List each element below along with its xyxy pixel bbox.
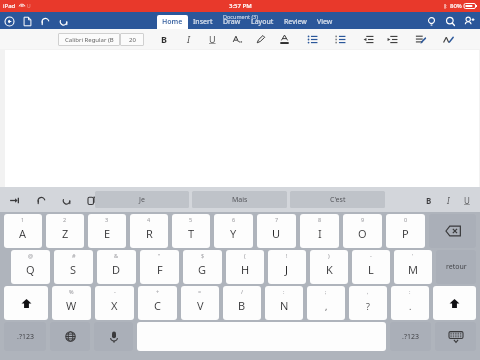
button[interactable]: I <box>442 194 454 206</box>
staticText: Review <box>284 17 307 27</box>
button[interactable]: 1 <box>4 214 42 248</box>
button[interactable]: 0 <box>386 214 425 248</box>
button[interactable]: Review <box>279 15 312 29</box>
button[interactable]: Font color <box>272 30 296 48</box>
button[interactable]: Je <box>95 191 189 208</box>
staticText: U <box>209 33 216 45</box>
button[interactable]: Paste <box>84 193 98 207</box>
button[interactable]: View <box>312 15 338 29</box>
button[interactable]: I <box>176 30 200 48</box>
button[interactable]: # <box>54 250 93 284</box>
button[interactable]: Numbered list <box>328 30 352 48</box>
button[interactable]: % <box>52 286 91 320</box>
button[interactable]: " <box>140 250 179 284</box>
staticText: Z <box>62 226 69 241</box>
button[interactable]: Search <box>445 16 456 27</box>
button[interactable]: Back <box>4 16 15 27</box>
button[interactable]: ; <box>307 286 345 320</box>
button[interactable]: Font color options <box>224 30 248 48</box>
button[interactable]: Tell me <box>426 16 437 27</box>
button[interactable]: Bulleted list <box>300 30 324 48</box>
button[interactable]: Calibri Regular (B <box>58 33 120 46</box>
staticText: : <box>283 288 285 295</box>
button[interactable]: ) <box>310 250 348 284</box>
staticText: T <box>188 226 195 241</box>
button[interactable]: - <box>352 250 390 284</box>
staticText: . <box>409 300 412 312</box>
button[interactable]: Draw <box>218 15 246 29</box>
button[interactable]: 9 <box>343 214 382 248</box>
button[interactable]: U <box>461 194 473 206</box>
staticText: " <box>158 252 161 259</box>
button[interactable]: Redo <box>59 193 73 207</box>
button[interactable]: 2 <box>46 214 84 248</box>
staticText: View <box>317 17 333 27</box>
staticText: Draw <box>223 17 241 27</box>
button[interactable]: Home <box>157 15 188 29</box>
button[interactable]: : <box>265 286 303 320</box>
button[interactable]: Increase indent <box>380 30 404 48</box>
button[interactable]: .?123 <box>390 322 431 351</box>
button[interactable]: Dictation <box>94 322 133 351</box>
button[interactable]: & <box>97 250 136 284</box>
button[interactable]: 3 <box>88 214 126 248</box>
button[interactable]: 4 <box>130 214 168 248</box>
button[interactable]: = <box>181 286 219 320</box>
staticText: - <box>114 288 116 295</box>
button[interactable]: Shift <box>433 286 476 320</box>
button[interactable]: @ <box>11 250 50 284</box>
button[interactable]: Highlight <box>248 30 272 48</box>
button[interactable]: Undo <box>40 16 51 27</box>
staticText: retour <box>446 262 467 272</box>
staticText: Q <box>26 262 35 277</box>
staticText: : <box>409 288 411 295</box>
staticText: Home <box>162 17 183 27</box>
button[interactable]: - <box>95 286 134 320</box>
button[interactable]: B <box>423 194 435 206</box>
button[interactable]: Change language <box>50 322 90 351</box>
button[interactable]: Shift <box>4 286 48 320</box>
button[interactable]: Mais <box>192 191 287 208</box>
button[interactable]: 20 <box>120 33 144 46</box>
button[interactable]: B <box>152 30 176 48</box>
button[interactable]: Tab <box>7 193 21 207</box>
button[interactable]: + <box>138 286 177 320</box>
button[interactable]: Insert <box>188 15 218 29</box>
button[interactable]: : <box>391 286 429 320</box>
button[interactable]: 7 <box>257 214 296 248</box>
button[interactable]: File <box>22 16 33 27</box>
staticText: J <box>285 262 289 277</box>
button[interactable]: .?123 <box>4 322 46 351</box>
button[interactable]: Layout <box>246 15 279 29</box>
button[interactable]: Redo <box>58 16 69 27</box>
button[interactable]: 8 <box>300 214 339 248</box>
button[interactable]: ' <box>394 250 432 284</box>
button[interactable]: Undo <box>34 193 48 207</box>
button[interactable]: Styles <box>436 30 460 48</box>
button[interactable]: C'est <box>290 191 385 208</box>
button[interactable]: Hide keyboard <box>435 322 476 351</box>
staticText: U <box>464 195 470 206</box>
button[interactable]: 6 <box>214 214 253 248</box>
button[interactable]: Share <box>464 16 475 27</box>
button[interactable]: Align <box>408 30 432 48</box>
button[interactable]: , <box>349 286 387 320</box>
staticText: % <box>69 288 74 295</box>
staticText: H <box>241 262 250 277</box>
button[interactable]: $ <box>183 250 222 284</box>
button[interactable]: Decrease indent <box>356 30 380 48</box>
staticText: 7 <box>275 216 279 223</box>
staticText: E <box>104 226 111 241</box>
button[interactable]: / <box>223 286 261 320</box>
button[interactable]: ( <box>226 250 264 284</box>
button[interactable]: 5 <box>172 214 210 248</box>
staticText: O <box>358 226 367 241</box>
button[interactable]: ! <box>268 250 306 284</box>
staticText: B <box>426 195 432 206</box>
button[interactable]: Backspace <box>429 214 476 248</box>
staticText: ' <box>412 252 414 259</box>
button[interactable]: retour <box>436 250 476 284</box>
staticText: Layout <box>251 17 274 27</box>
button[interactable]: U <box>200 30 224 48</box>
